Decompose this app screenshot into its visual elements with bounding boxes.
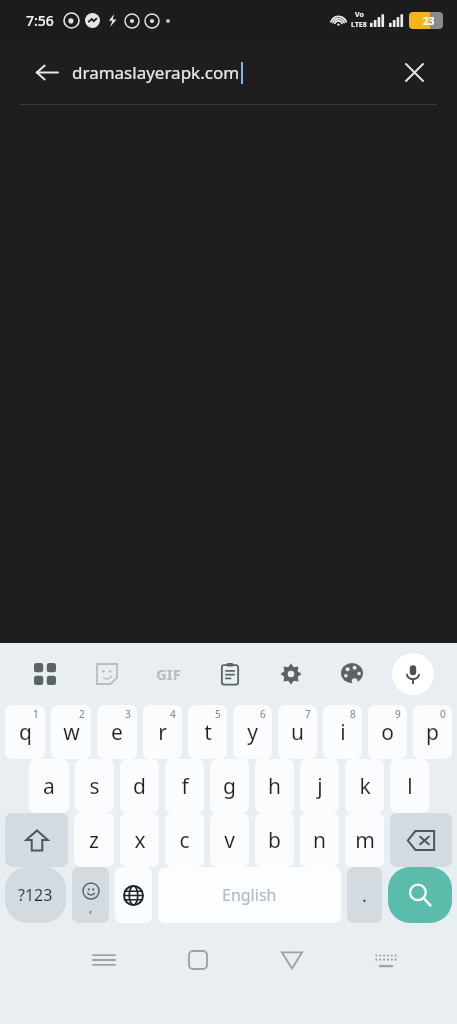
button[interactable]: Emoji and comma (72, 867, 109, 923)
button[interactable]: Apps (14, 643, 76, 705)
staticText: c (179, 826, 190, 855)
button[interactable]: w (51, 705, 91, 759)
button[interactable]: ?123 (5, 867, 66, 923)
button[interactable]: z (74, 813, 114, 867)
staticText: 2 (79, 707, 85, 721)
button[interactable]: k (345, 759, 384, 813)
staticText: 3 (125, 707, 131, 721)
staticText: p (426, 718, 439, 747)
button[interactable]: m (345, 813, 384, 867)
staticText: English (222, 884, 277, 906)
staticText: i (340, 718, 346, 747)
button[interactable]: t (188, 705, 227, 759)
button[interactable]: j (300, 759, 339, 813)
staticText: 23 (423, 14, 435, 28)
button[interactable]: Hide keyboard (339, 931, 433, 989)
staticText: e (111, 718, 123, 747)
staticText: 4 (170, 707, 176, 721)
button[interactable]: g (210, 759, 249, 813)
staticText: j (317, 772, 323, 801)
staticText: l (407, 772, 413, 801)
button[interactable]: Backspace (390, 813, 452, 867)
button[interactable]: Clipboard (199, 643, 260, 705)
button[interactable]: Stickers (76, 643, 138, 705)
staticText: LTE8 (351, 20, 367, 30)
staticText: h (268, 772, 281, 801)
staticText: n (313, 826, 326, 855)
button[interactable]: d (120, 759, 159, 813)
staticText: 0 (440, 707, 446, 721)
staticText: g (223, 772, 236, 801)
button[interactable]: v (210, 813, 249, 867)
staticText: t (204, 718, 212, 747)
button[interactable]: Menu (57, 931, 151, 989)
staticText: ?123 (18, 884, 53, 906)
staticText: m (355, 826, 375, 855)
button[interactable]: Back (245, 931, 339, 989)
staticText: x (134, 826, 146, 855)
staticText: y (247, 718, 258, 747)
button[interactable]: Themes (321, 643, 382, 705)
button[interactable]: English (158, 867, 341, 923)
button[interactable]: Search (388, 867, 452, 923)
staticText: 7:56 (26, 11, 54, 30)
staticText: GIF (156, 664, 181, 684)
button[interactable]: Shift (5, 813, 68, 867)
staticText: o (381, 718, 394, 747)
button[interactable]: dramaslayerapk.com (72, 61, 393, 84)
button[interactable]: l (390, 759, 429, 813)
staticText: dramaslayerapk.com (72, 61, 240, 84)
staticText: u (291, 718, 304, 747)
button[interactable]: p (413, 705, 452, 759)
staticText: b (268, 826, 281, 855)
button[interactable]: f (165, 759, 204, 813)
button[interactable]: Settings (260, 643, 321, 705)
button[interactable]: . (347, 867, 382, 923)
staticText: a (43, 772, 55, 801)
button[interactable]: h (255, 759, 294, 813)
staticText: Vo (355, 10, 364, 20)
button[interactable]: n (300, 813, 339, 867)
button[interactable]: GIF (138, 643, 199, 705)
button[interactable]: Voice input (382, 643, 443, 705)
button[interactable]: b (255, 813, 294, 867)
button[interactable]: u (278, 705, 317, 759)
staticText: 7 (305, 707, 311, 721)
button[interactable]: q (5, 705, 45, 759)
staticText: v (224, 826, 235, 855)
button[interactable]: Home (151, 931, 245, 989)
staticText: 9 (395, 707, 401, 721)
button[interactable]: e (97, 705, 137, 759)
button[interactable]: Back (24, 50, 68, 94)
button[interactable]: Change language (115, 867, 152, 923)
button[interactable]: c (165, 813, 204, 867)
staticText: f (181, 772, 189, 801)
button[interactable]: a (29, 759, 69, 813)
button[interactable]: o (368, 705, 407, 759)
button[interactable]: y (233, 705, 272, 759)
staticText: s (89, 772, 100, 801)
button[interactable]: s (75, 759, 114, 813)
button[interactable]: Clear (393, 51, 435, 93)
staticText: 6 (260, 707, 266, 721)
staticText: w (63, 718, 80, 747)
staticText: d (133, 772, 146, 801)
staticText: r (158, 718, 167, 747)
staticText: z (89, 826, 99, 855)
staticText: 8 (350, 707, 356, 721)
staticText: 5 (215, 707, 221, 721)
staticText: , (89, 898, 93, 916)
staticText: . (362, 883, 367, 908)
staticText: q (19, 718, 32, 747)
staticText: k (359, 772, 371, 801)
button[interactable]: i (323, 705, 362, 759)
button[interactable]: x (120, 813, 159, 867)
button[interactable]: r (143, 705, 182, 759)
staticText: 1 (33, 707, 39, 721)
